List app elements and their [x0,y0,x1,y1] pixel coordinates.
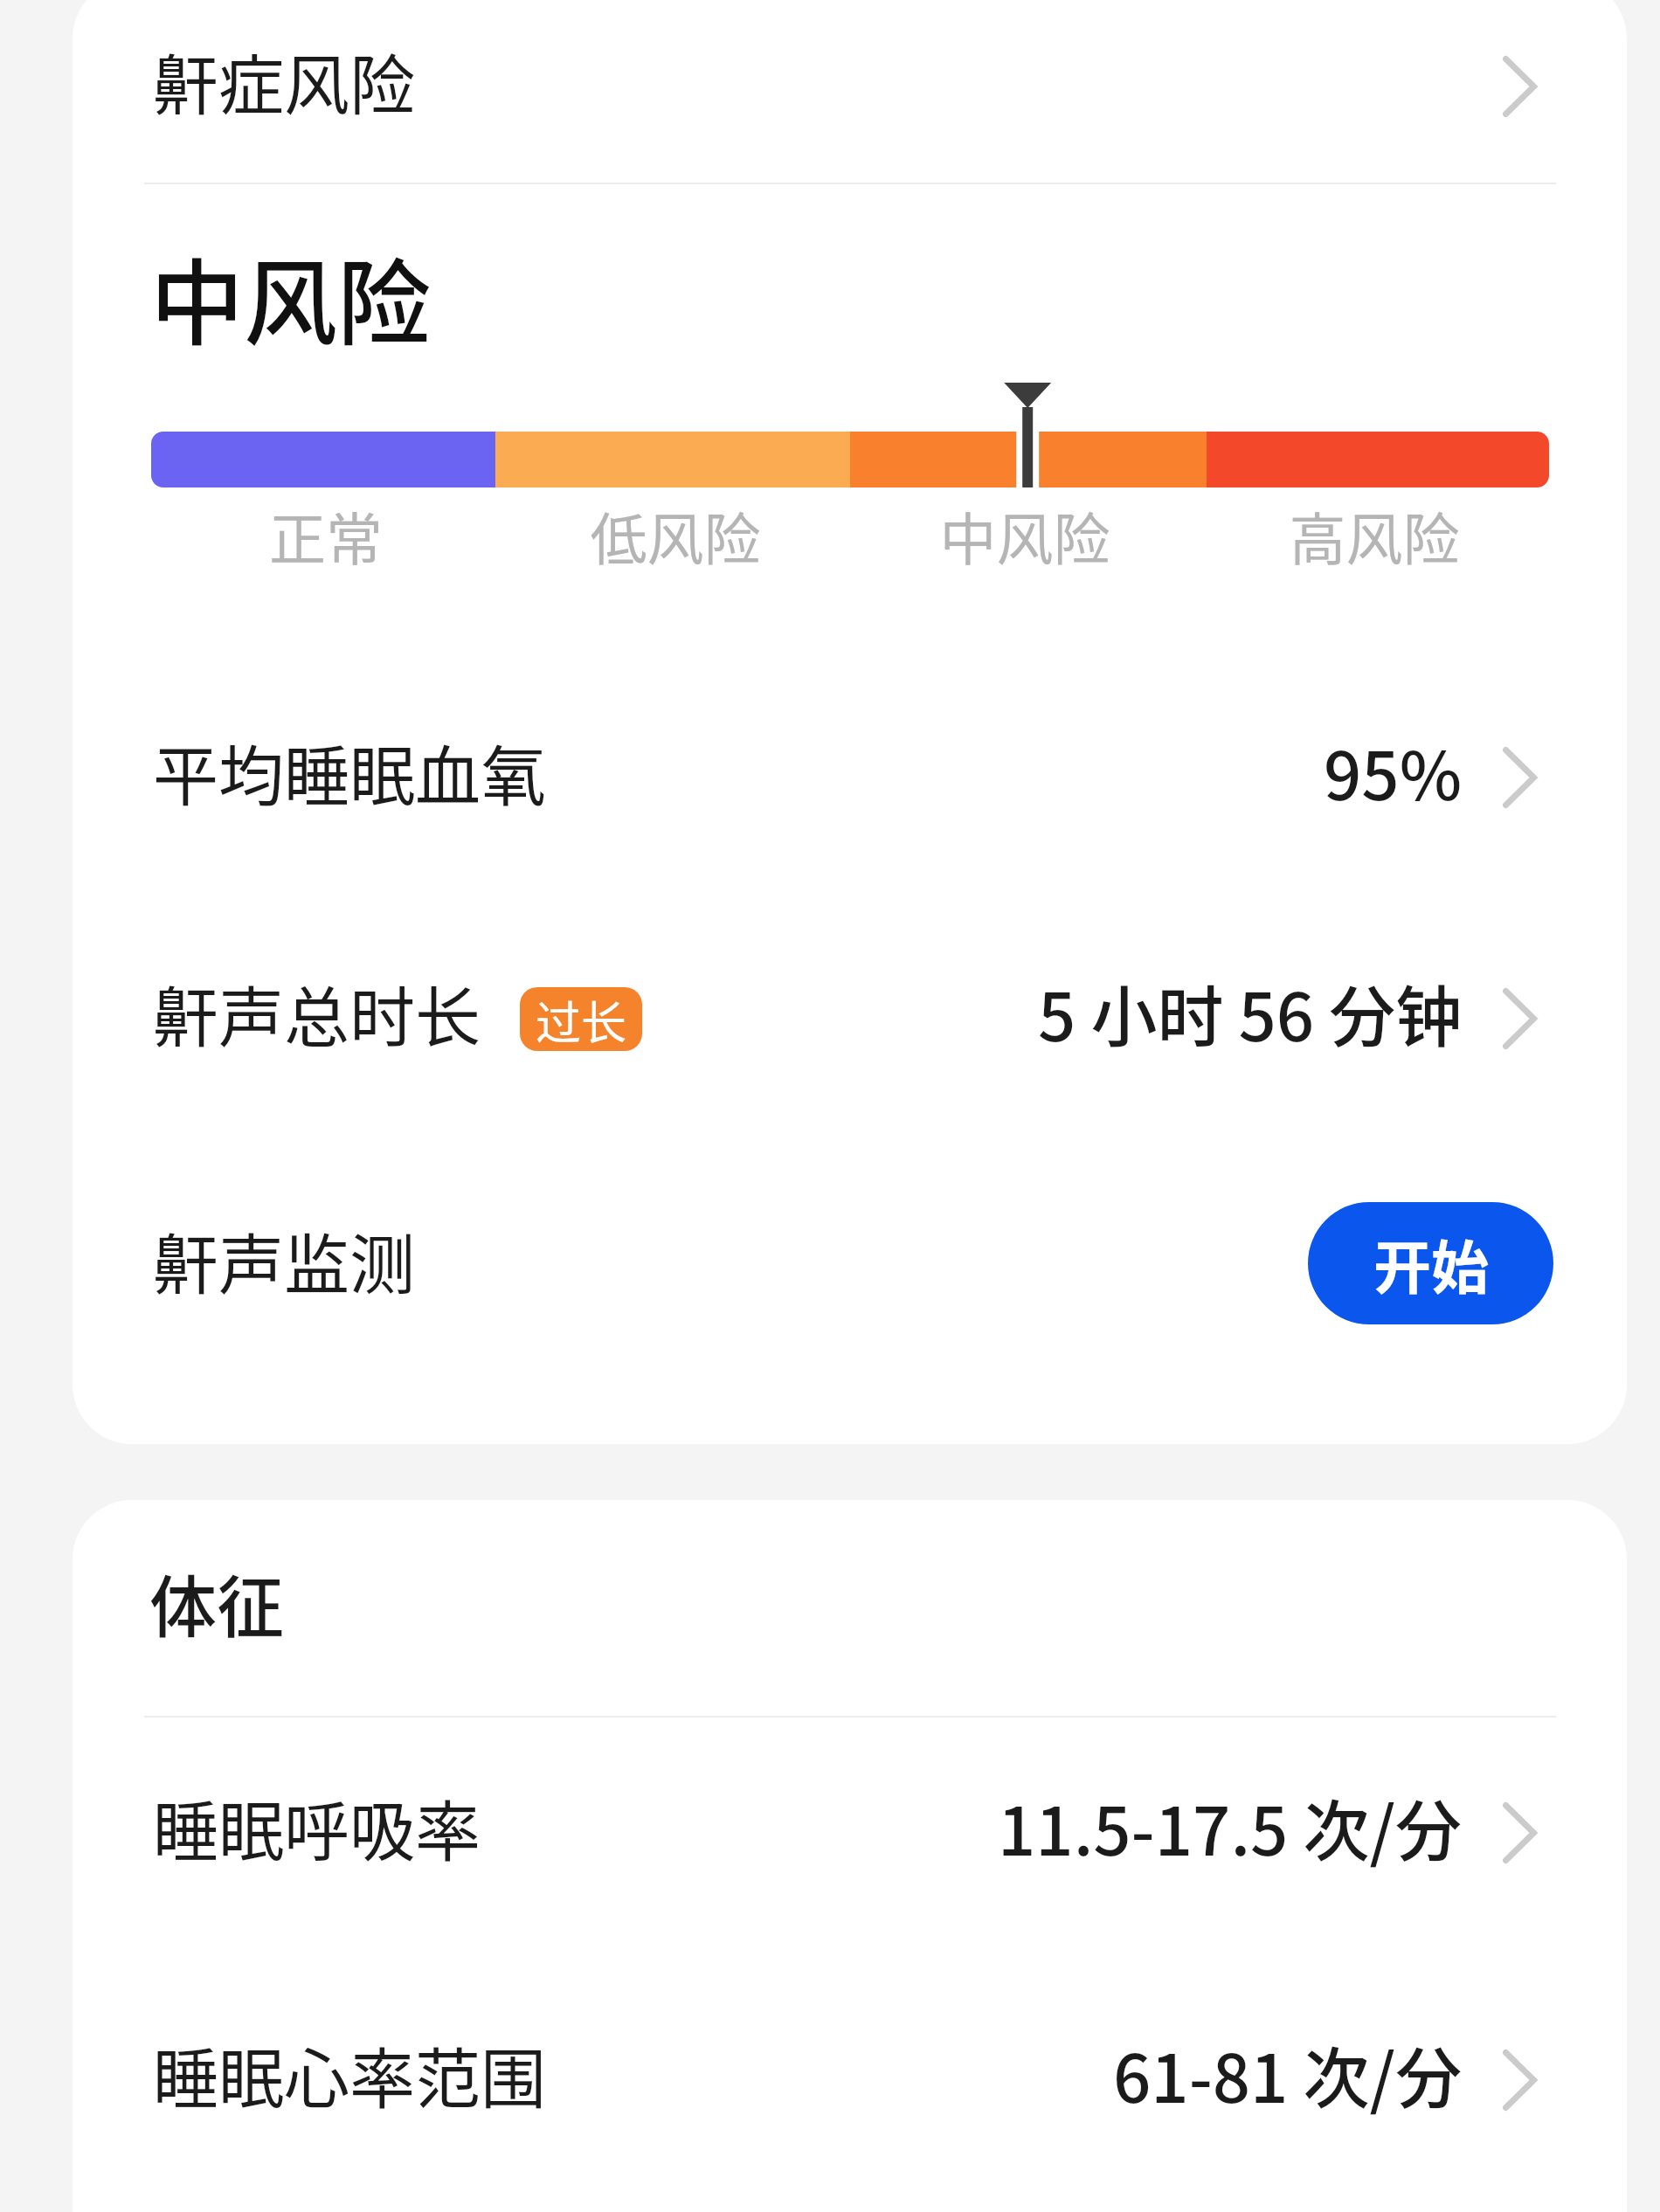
staticText: 正常 [151,494,501,577]
staticText: 睡眠心率范围 [153,2027,547,2122]
other: 查看平均睡眠血氧 [1503,747,1537,808]
button[interactable]: 开始 [1308,1202,1553,1324]
staticText: 低风险 [501,494,850,577]
button[interactable]: 睡眠呼吸率 [73,1739,1627,1914]
button[interactable]: 鼾声总时长 [73,925,1627,1100]
staticText: 5 小时 56 分钟 [1038,964,1463,1061]
other: 查看鼾声总时长 [1503,988,1537,1049]
staticText: 61-81 次/分 [1113,2026,1463,2122]
other: 查看鼾症风险 [1503,56,1537,117]
staticText: 睡眠呼吸率 [153,1780,481,1875]
staticText: 体征 [149,1554,284,1651]
button[interactable]: 鼾症风险 [73,0,1627,161]
staticText: 鼾症风险 [153,33,416,128]
staticText: 鼾声监测 [153,1213,416,1308]
staticText: 高风险 [1200,494,1549,577]
staticText: 平均睡眠血氧 [153,724,547,819]
other: 查看睡眠心率范围 [1503,2050,1537,2111]
staticText: 鼾声总时长 [153,965,481,1061]
staticText: 95% [1324,723,1463,819]
staticText: 11.5-17.5 次/分 [998,1779,1463,1875]
button[interactable]: 睡眠心率范围 [73,1987,1627,2161]
button[interactable]: 平均睡眠血氧 [73,684,1627,859]
staticText: 过长 [536,987,627,1051]
staticText: 中风险 [150,229,432,364]
staticText: 中风险 [850,494,1200,577]
staticText: 开始 [1373,1221,1489,1305]
other: 查看睡眠呼吸率 [1503,1802,1537,1863]
